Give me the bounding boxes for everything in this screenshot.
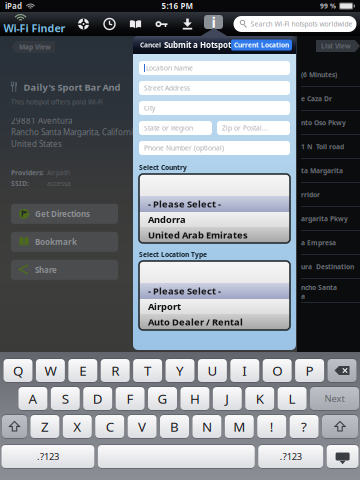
button[interactable]: Q xyxy=(3,359,32,382)
button[interactable]: C xyxy=(95,415,124,438)
button[interactable]: Map View xyxy=(11,41,55,53)
staticText: City xyxy=(144,104,155,112)
staticText: L xyxy=(289,390,296,407)
button[interactable]: Shift xyxy=(322,415,358,438)
button[interactable]: Info xyxy=(200,12,226,36)
button[interactable]: ! xyxy=(257,415,286,438)
button[interactable]: ura Destination xyxy=(301,255,360,279)
button[interactable]: U xyxy=(198,359,227,382)
button[interactable]: G xyxy=(148,387,177,410)
button[interactable]: Current Location xyxy=(231,39,292,50)
staticText: Bookmark xyxy=(35,236,77,247)
button[interactable]: L xyxy=(278,387,307,410)
button[interactable]: Hide keyboard xyxy=(327,445,359,468)
button[interactable]: Bookmark xyxy=(11,232,118,252)
button[interactable]: H xyxy=(180,387,209,410)
button[interactable]: rridor xyxy=(301,183,360,207)
button[interactable]: N xyxy=(192,415,221,438)
button[interactable] xyxy=(98,445,255,468)
staticText: e Caza Dr xyxy=(301,94,332,103)
staticText: Current Location xyxy=(234,41,289,49)
button[interactable]: Cancel xyxy=(137,39,164,51)
button[interactable]: Shift xyxy=(2,415,27,438)
staticText: Rancho Santa Margarita, California xyxy=(11,127,137,137)
staticText: ncho Santa xyxy=(301,283,337,292)
button[interactable]: I xyxy=(230,359,259,382)
button[interactable]: E xyxy=(68,359,97,382)
staticText: nto Oso Pkwy xyxy=(301,118,346,127)
staticText: United Arab Emirates xyxy=(148,229,248,241)
button[interactable]: Recent xyxy=(96,12,122,36)
button[interactable]: V xyxy=(128,415,157,438)
staticText: Submit a Hotspot xyxy=(164,40,231,50)
button[interactable]: W xyxy=(36,359,65,382)
staticText: C xyxy=(106,418,114,435)
button[interactable]: 1 N Toll road xyxy=(301,135,360,159)
button[interactable]: Delete xyxy=(327,359,356,382)
staticText: Providers: xyxy=(11,168,44,177)
button[interactable]: Wi-Fi Finder xyxy=(0,12,70,36)
staticText: rridor xyxy=(301,190,320,199)
button[interactable]: Guide xyxy=(122,12,148,36)
button[interactable]: a Empresa xyxy=(301,231,360,255)
staticText: Street Address xyxy=(144,84,190,92)
button[interactable]: A xyxy=(18,387,47,410)
staticText: P xyxy=(306,362,314,379)
staticText: R xyxy=(111,362,119,379)
button[interactable]: Logins xyxy=(148,12,174,36)
button[interactable]: .?123 xyxy=(258,445,323,468)
button[interactable]: F xyxy=(116,387,145,410)
staticText: E xyxy=(79,362,86,379)
button[interactable]: Z xyxy=(30,415,59,438)
staticText: N xyxy=(202,418,212,435)
button[interactable]: P xyxy=(295,359,324,382)
button[interactable]: M xyxy=(225,415,254,438)
button[interactable]: S xyxy=(51,387,80,410)
staticText: B xyxy=(170,418,179,435)
button[interactable]: T xyxy=(133,359,162,382)
button[interactable]: D xyxy=(83,387,112,410)
button[interactable]: Next xyxy=(310,387,359,410)
staticText: Phone Number (optional) xyxy=(144,144,224,152)
staticText: Auto Dealer / Rental xyxy=(148,316,243,328)
button[interactable]: R xyxy=(101,359,130,382)
staticText: S xyxy=(62,390,69,407)
button[interactable]: Share xyxy=(11,260,118,280)
button[interactable]: O xyxy=(263,359,292,382)
staticText: K xyxy=(256,390,264,407)
button[interactable]: K xyxy=(245,387,274,410)
staticText: Select Location Type xyxy=(139,250,207,259)
button[interactable]: (6 Minutes) xyxy=(301,63,360,87)
staticText: Andorra xyxy=(148,213,186,226)
staticText: Select Country xyxy=(139,163,187,172)
staticText: - Please Select - xyxy=(148,198,221,210)
button[interactable]: .?123 xyxy=(1,445,94,468)
button[interactable]: ncho Santa xyxy=(301,279,360,303)
button[interactable]: B xyxy=(160,415,189,438)
button[interactable]: X xyxy=(63,415,92,438)
staticText: 5:16 PM xyxy=(162,1,194,11)
staticText: accessa xyxy=(47,179,71,188)
staticText: X xyxy=(73,418,81,435)
button[interactable]: J xyxy=(213,387,242,410)
button[interactable]: Nearby xyxy=(70,12,96,36)
staticText: F xyxy=(127,390,134,407)
staticText: ura Destination xyxy=(301,262,354,271)
button[interactable]: ? xyxy=(290,415,319,438)
staticText: Get Directions xyxy=(35,208,90,219)
button[interactable]: Downloads xyxy=(174,12,200,36)
staticText: Share xyxy=(35,264,57,275)
button[interactable]: e Caza Dr xyxy=(301,87,360,111)
staticText: Zip or Postal... xyxy=(222,124,268,132)
staticText: SSID: xyxy=(11,179,29,188)
button[interactable]: nto Oso Pkwy xyxy=(301,111,360,135)
button[interactable]: Search Wi-Fi hotspots worldwide xyxy=(233,16,356,32)
button[interactable]: ta Margarita xyxy=(301,159,360,183)
staticText: O xyxy=(272,362,282,379)
button[interactable]: argarita Pkwy xyxy=(301,207,360,231)
button[interactable]: List View xyxy=(316,40,360,52)
button[interactable]: Get Directions xyxy=(11,204,118,224)
button[interactable]: Y xyxy=(165,359,194,382)
staticText: Next xyxy=(324,392,344,405)
staticText: Airpath xyxy=(47,168,70,177)
